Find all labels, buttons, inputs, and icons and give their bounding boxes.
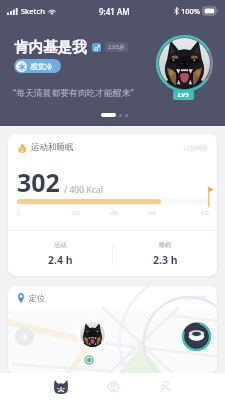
button[interactable]: Profile bbox=[139, 373, 191, 400]
staticText: 感觉冷 bbox=[30, 62, 53, 71]
staticText: 2.3 h bbox=[153, 253, 178, 267]
button[interactable]: 感觉冷 bbox=[14, 59, 61, 73]
staticText: 400 bbox=[171, 210, 209, 217]
button[interactable]: Pets bbox=[34, 373, 87, 400]
staticText: 12分钟前 bbox=[183, 144, 208, 152]
staticText: 睡眠 bbox=[159, 241, 171, 249]
staticText: 100% bbox=[181, 6, 201, 16]
button[interactable]: Track bbox=[87, 373, 139, 400]
staticText: 2.03岁 bbox=[108, 43, 125, 51]
staticText: 定位 bbox=[29, 293, 45, 303]
staticText: 200 bbox=[95, 210, 133, 217]
staticText: 2.4 h bbox=[48, 253, 73, 267]
staticText: 肯内基是我 bbox=[14, 38, 87, 56]
staticText: LV5 bbox=[178, 91, 189, 99]
staticText: 100 bbox=[56, 210, 95, 217]
staticText: 运动和睡眠 bbox=[31, 142, 74, 153]
button[interactable]: 活动 bbox=[8, 231, 112, 276]
staticText: / 400 Kcal bbox=[64, 184, 103, 196]
button[interactable]: Tracker device bbox=[181, 321, 212, 352]
staticText: “每天清晨都要有肉吃才能醒来” bbox=[13, 87, 134, 99]
staticText: 302 bbox=[17, 165, 60, 199]
staticText: Sketch bbox=[21, 6, 45, 16]
button[interactable]: Refresh location bbox=[15, 327, 34, 346]
staticText: 9:41 AM bbox=[99, 6, 130, 17]
staticText: 0 bbox=[17, 210, 56, 217]
button[interactable]: 睡眠 bbox=[113, 231, 217, 276]
staticText: 300 bbox=[133, 210, 171, 217]
staticText: 活动 bbox=[54, 241, 66, 249]
staticText: 12分钟前 bbox=[183, 294, 208, 302]
